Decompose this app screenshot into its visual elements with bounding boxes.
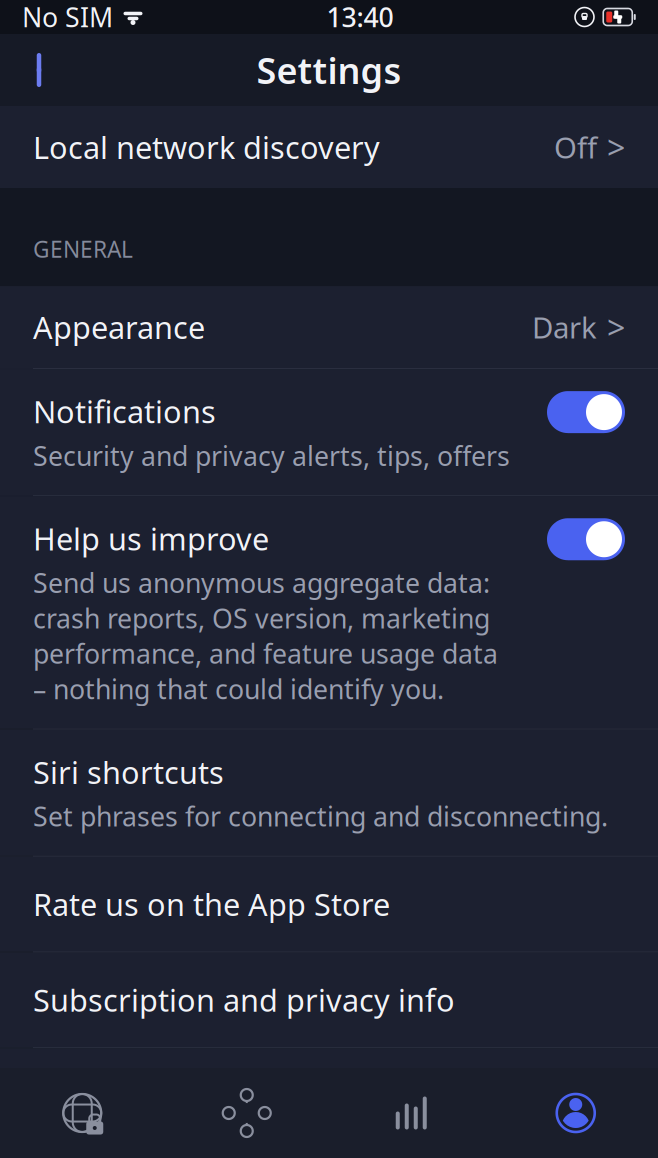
staticText: Set phrases for connecting and disconnec… (33, 798, 608, 834)
button[interactable]: Subscription and privacy info (0, 952, 658, 1047)
staticText: Tell friends about NordVPN (33, 1075, 425, 1116)
staticText: Send us anonymous aggregate data: crash … (33, 565, 498, 707)
staticText: Security and privacy alerts, tips, offer… (33, 438, 510, 473)
button[interactable]: Siri shortcuts (0, 730, 658, 856)
staticText: Local network discovery (33, 127, 380, 167)
button[interactable]: Notifications (0, 369, 658, 495)
staticText: GENERAL (33, 234, 133, 264)
button[interactable]: Help us improve (0, 496, 658, 729)
staticText: Dark (532, 308, 597, 347)
button[interactable]: Meshnet (164, 1091, 329, 1135)
staticText: > (607, 306, 625, 348)
staticText: Rate us on the App Store (33, 884, 390, 924)
staticText: Siri shortcuts (33, 752, 224, 792)
staticText: > (607, 126, 625, 168)
staticText: Off (554, 127, 597, 166)
staticText: No SIM (22, 0, 113, 35)
button[interactable]: Back (16, 47, 62, 93)
staticText: Appearance (33, 307, 205, 347)
button[interactable]: Account (493, 1091, 658, 1135)
button[interactable]: Threat Protection (329, 1091, 493, 1135)
staticText: Notifications (33, 391, 216, 432)
button[interactable]: VPN (0, 1091, 164, 1135)
button[interactable]: Local network discovery (0, 106, 658, 188)
button[interactable]: Rate us on the App Store (0, 857, 658, 951)
button[interactable]: Tell friends about NordVPN (0, 1048, 658, 1143)
staticText: 13:40 (326, 0, 393, 35)
button[interactable]: Appearance (0, 286, 658, 368)
staticText: Subscription and privacy info (33, 979, 455, 1020)
staticText: Help us improve (33, 518, 269, 559)
staticText: Settings (256, 46, 401, 94)
